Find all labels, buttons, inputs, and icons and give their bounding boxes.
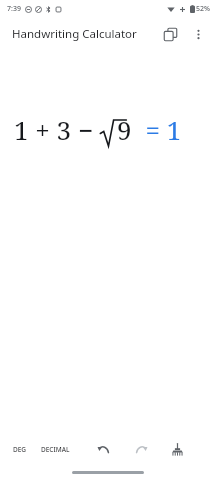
staticText: Handwriting Calculator	[12, 26, 137, 42]
staticText: = 1	[132, 112, 182, 147]
button[interactable]: Clear	[165, 437, 189, 461]
staticText: DECIMAL	[41, 445, 70, 454]
button[interactable]: Copy	[156, 20, 184, 48]
staticText: DEG	[13, 445, 27, 454]
button[interactable]: More options	[184, 20, 212, 48]
button[interactable]: DEG	[8, 442, 32, 457]
button[interactable]: DECIMAL	[36, 442, 75, 457]
button[interactable]: Undo	[91, 437, 115, 461]
staticText: 1 + 3 −	[14, 112, 100, 147]
staticText: 52%	[196, 4, 210, 14]
staticText: 9	[117, 112, 132, 147]
button[interactable]: Redo	[129, 437, 153, 461]
staticText: 7:39	[7, 4, 21, 14]
